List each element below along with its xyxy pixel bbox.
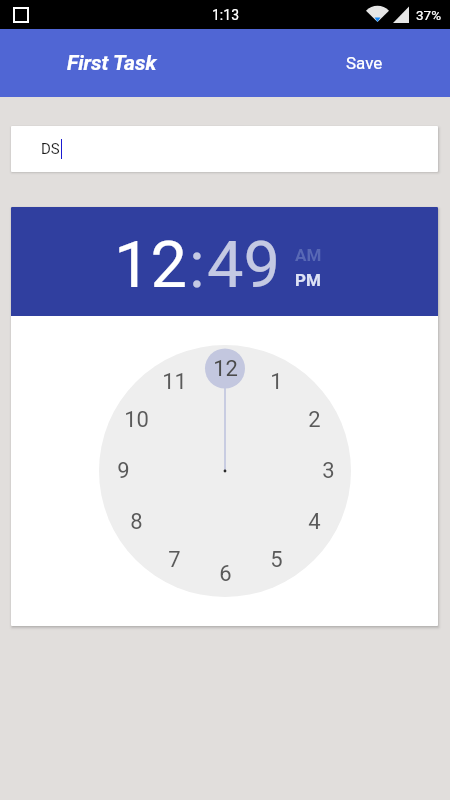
staticText: 6 [219,561,232,587]
staticText: 5 [270,547,283,573]
staticText: 11 [162,369,187,395]
button[interactable]: Clock face [99,345,351,597]
staticText: First Task [67,51,157,76]
button[interactable]: PM [294,270,322,290]
staticText: 2 [308,407,321,433]
staticText: 3 [322,458,335,484]
button[interactable]: 8 [116,502,156,542]
staticText: 8 [130,509,143,535]
button[interactable]: 1 [256,362,296,402]
button[interactable]: 7 [154,540,194,580]
staticText: 7 [168,547,181,573]
staticText: 1 [270,369,283,395]
button[interactable]: 3 [308,451,348,491]
button[interactable]: 12 [114,227,188,303]
button[interactable]: Save [338,45,391,81]
button[interactable]: 6 [205,554,245,594]
button[interactable]: 4 [294,502,334,542]
staticText: 9 [117,458,130,484]
button[interactable]: 2 [294,400,334,440]
button[interactable]: AM [294,245,323,265]
staticText: 37% [416,7,442,23]
staticText: 10 [124,407,149,433]
button[interactable]: 10 [116,400,156,440]
staticText: : [189,227,205,303]
button[interactable]: 5 [256,540,296,580]
button[interactable]: 9 [103,451,143,491]
button[interactable]: 12 [205,349,245,389]
button[interactable]: 49 [207,227,281,303]
button[interactable]: 11 [154,362,194,402]
staticText: 4 [308,509,321,535]
staticText: 12 [213,356,238,382]
button[interactable]: DS [11,126,438,172]
staticText: DS [41,140,60,158]
staticText: 1:13 [212,7,239,23]
staticText: Save [346,53,383,73]
